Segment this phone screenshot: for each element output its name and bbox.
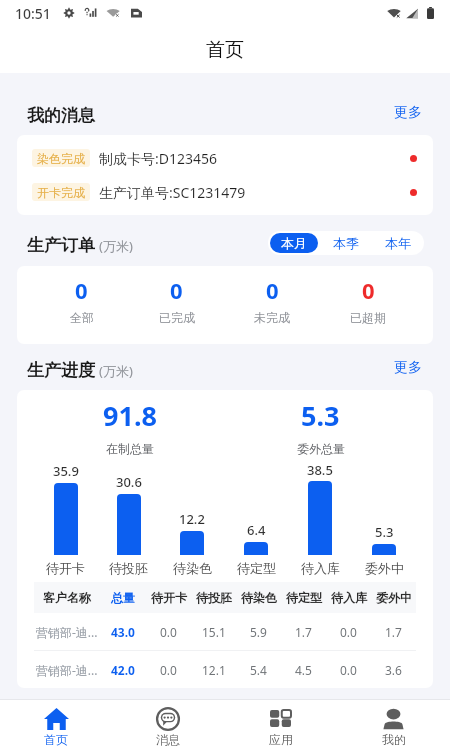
button[interactable]: 更多 bbox=[392, 355, 424, 381]
staticText: 委外中 bbox=[365, 560, 404, 576]
staticText: 待染色 bbox=[173, 560, 212, 576]
staticText: 未完成 bbox=[254, 310, 290, 325]
button[interactable]: 0 bbox=[224, 266, 320, 344]
staticText: 3.6 bbox=[385, 662, 402, 678]
staticText: 5.3 bbox=[375, 523, 394, 541]
staticText: 待投胚 bbox=[196, 590, 232, 605]
staticText: 本月 bbox=[281, 235, 307, 251]
button[interactable]: 本季 bbox=[322, 233, 370, 253]
staticText: 0.0 bbox=[160, 624, 177, 640]
button[interactable]: Apps bbox=[224, 703, 337, 750]
staticText: 42.0 bbox=[111, 662, 135, 678]
staticText: 消息 bbox=[156, 732, 180, 747]
staticText: 本年 bbox=[385, 235, 411, 251]
staticText: 6.4 bbox=[247, 521, 266, 539]
staticText: 待染色 bbox=[241, 590, 277, 605]
staticText: 0 bbox=[75, 275, 88, 305]
button[interactable]: 更多 bbox=[392, 100, 424, 126]
staticText: (万米) bbox=[99, 362, 133, 380]
button[interactable]: Messages bbox=[112, 703, 224, 750]
button[interactable]: 营销部-迪... bbox=[34, 651, 416, 688]
staticText: 5.9 bbox=[250, 624, 267, 640]
button[interactable]: 0 bbox=[320, 266, 416, 344]
staticText: 待开卡 bbox=[151, 590, 187, 605]
staticText: 15.1 bbox=[202, 624, 226, 640]
staticText: 38.5 bbox=[307, 461, 333, 478]
staticText: 10:51 bbox=[15, 4, 51, 23]
staticText: 30.6 bbox=[116, 473, 142, 491]
staticText: 待开卡 bbox=[46, 560, 85, 576]
button[interactable]: 营销部-迪... bbox=[34, 613, 416, 650]
staticText: 0 bbox=[362, 275, 375, 305]
staticText: 营销部-迪... bbox=[36, 662, 98, 678]
staticText: 0 bbox=[266, 275, 279, 305]
staticText: 营销部-迪... bbox=[36, 624, 98, 640]
button[interactable]: Home bbox=[0, 703, 112, 750]
staticText: 委外总量 bbox=[297, 441, 345, 456]
staticText: 4.5 bbox=[295, 662, 312, 678]
staticText: 委外中 bbox=[376, 590, 412, 605]
button[interactable]: 染色完成 bbox=[17, 141, 433, 175]
staticText: 更多 bbox=[394, 104, 422, 122]
staticText: 总量 bbox=[111, 590, 135, 605]
staticText: 待入库 bbox=[301, 560, 340, 576]
button[interactable]: Profile bbox=[337, 703, 450, 750]
staticText: 待入库 bbox=[331, 590, 367, 605]
staticText: (万米) bbox=[99, 237, 133, 255]
staticText: 已超期 bbox=[350, 310, 386, 325]
button[interactable]: 本月 bbox=[270, 233, 318, 253]
staticText: 12.1 bbox=[202, 662, 226, 678]
staticText: 染色完成 bbox=[37, 151, 85, 166]
button[interactable]: 开卡完成 bbox=[17, 175, 433, 209]
staticText: 12.2 bbox=[179, 510, 205, 528]
staticText: 更多 bbox=[394, 359, 422, 377]
staticText: 0.0 bbox=[160, 662, 177, 678]
other: Profile bbox=[383, 708, 404, 730]
staticText: 0.0 bbox=[340, 662, 357, 678]
staticText: 0.0 bbox=[340, 624, 357, 640]
staticText: 5.3 bbox=[301, 397, 340, 434]
staticText: 35.9 bbox=[53, 462, 79, 480]
other: Apps bbox=[270, 710, 291, 727]
staticText: 1.7 bbox=[385, 624, 402, 640]
staticText: 待定型 bbox=[237, 560, 276, 576]
other: Home bbox=[44, 708, 69, 730]
staticText: 1.7 bbox=[295, 624, 312, 640]
other: Messages bbox=[156, 707, 180, 731]
staticText: 全部 bbox=[70, 310, 94, 325]
staticText: 应用 bbox=[269, 732, 293, 747]
button[interactable]: 本年 bbox=[374, 233, 422, 253]
staticText: 首页 bbox=[44, 732, 68, 747]
staticText: 开卡完成 bbox=[37, 185, 85, 200]
staticText: 生产进度 bbox=[27, 360, 95, 381]
staticText: 在制总量 bbox=[106, 441, 154, 456]
staticText: 已完成 bbox=[159, 310, 195, 325]
staticText: 待定型 bbox=[286, 590, 322, 605]
staticText: 首页 bbox=[206, 38, 244, 62]
staticText: 生产订单号:SC1231479 bbox=[99, 183, 246, 202]
button[interactable]: 0 bbox=[129, 266, 224, 344]
staticText: 待投胚 bbox=[109, 560, 148, 576]
staticText: 91.8 bbox=[103, 397, 157, 434]
staticText: 制成卡号:D123456 bbox=[99, 149, 218, 168]
staticText: 我的消息 bbox=[27, 105, 95, 126]
staticText: 客户名称 bbox=[43, 590, 91, 605]
button[interactable]: 0 bbox=[34, 266, 129, 344]
staticText: 生产订单 bbox=[27, 235, 95, 256]
staticText: 0 bbox=[170, 275, 183, 305]
staticText: 43.0 bbox=[111, 624, 135, 640]
staticText: 5.4 bbox=[250, 662, 267, 678]
staticText: 我的 bbox=[382, 732, 406, 747]
staticText: 本季 bbox=[333, 235, 359, 251]
